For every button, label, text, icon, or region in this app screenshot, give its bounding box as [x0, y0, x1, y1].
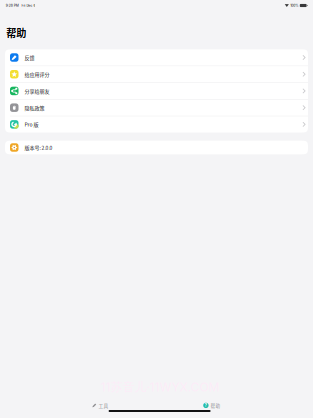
staticText: Pro 版 — [25, 121, 39, 128]
button[interactable]: 给应用评分 — [5, 66, 308, 82]
button[interactable]: ? — [203, 402, 221, 408]
button[interactable]: 隐私政策 — [5, 100, 308, 116]
staticText: 给应用评分 — [25, 71, 50, 78]
staticText: 100% — [290, 3, 298, 7]
staticText: Fri Dec 6 — [21, 3, 35, 7]
staticText: 反馈 — [25, 54, 35, 61]
button[interactable]: 版本号: 2.0.0 — [5, 141, 308, 154]
staticText: 帮助 — [211, 402, 221, 409]
staticText: 版本号: 2.0.0 — [25, 144, 53, 151]
staticText: 帮助 — [6, 25, 26, 40]
staticText: 分享给朋友 — [25, 87, 50, 95]
staticText: ? — [204, 403, 207, 408]
button[interactable]: Pro 版 — [5, 116, 308, 132]
staticText: 工具 — [99, 402, 109, 409]
staticText: 9:28 PM — [6, 3, 19, 7]
button[interactable]: 分享给朋友 — [5, 83, 308, 99]
button[interactable]: 工具 — [92, 402, 109, 408]
button[interactable]: 反馈 — [5, 49, 308, 66]
staticText: 隐私政策 — [25, 104, 45, 111]
